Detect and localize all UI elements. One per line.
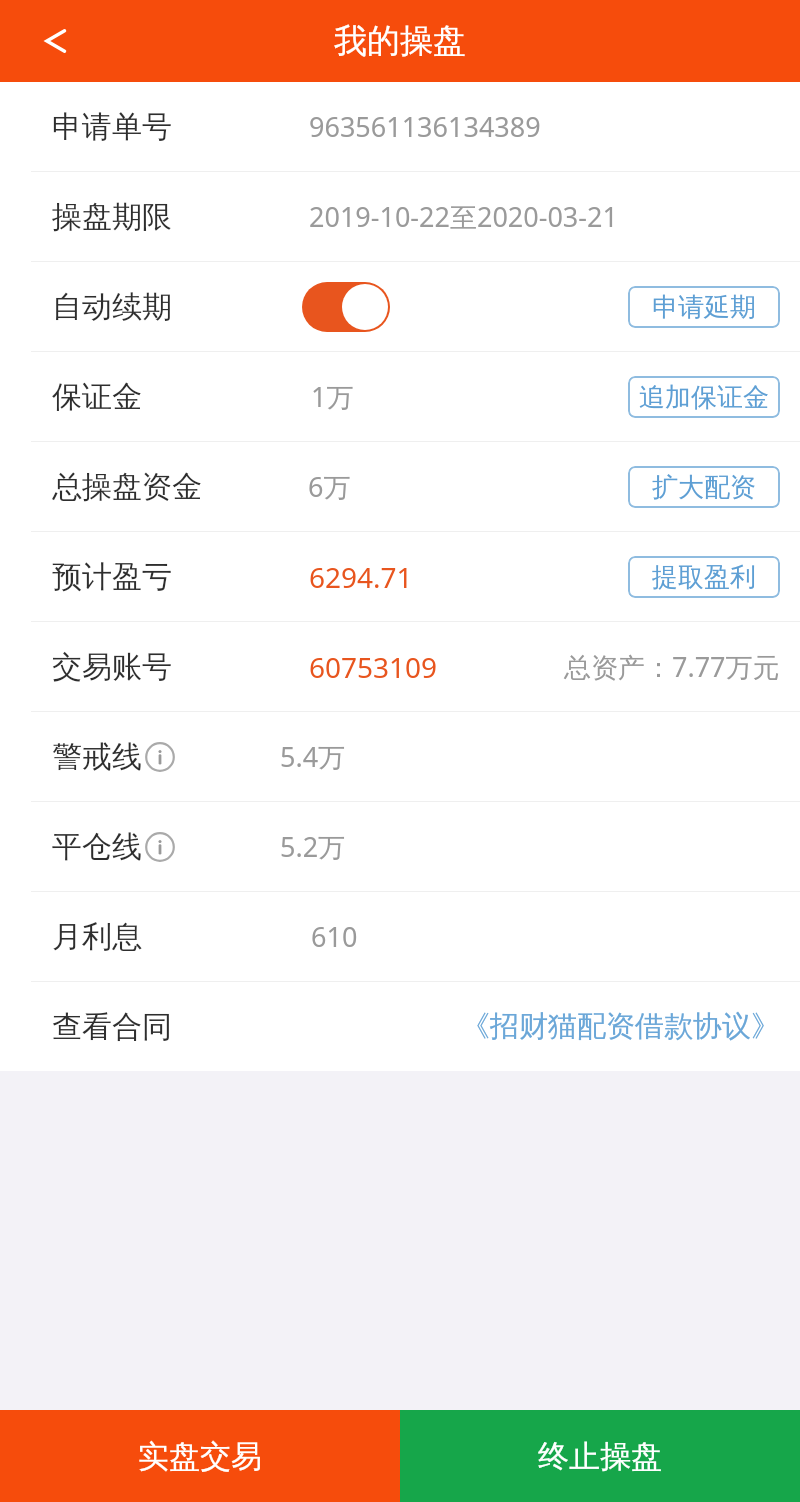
button[interactable]: 月利息 [0,892,800,981]
staticText: 平仓线 [52,828,142,866]
button[interactable]: 警戒线 [0,712,800,801]
button[interactable]: 返回 [22,10,84,72]
staticText: 6万 [308,468,351,505]
button[interactable]: 申请单号 [0,82,800,171]
staticText: 总资产：7.77万元 [564,648,780,685]
staticText: 扩大配资 [652,471,756,504]
staticText: 保证金 [52,378,142,416]
staticText: 交易账号 [52,648,172,686]
button[interactable]: 查看合同 [0,982,800,1071]
staticText: 追加保证金 [639,381,769,414]
button[interactable]: 预计盈亏 [0,532,800,621]
button[interactable]: 保证金 [0,352,800,441]
staticText: 《招财猫配资借款协议》 [461,1008,780,1045]
staticText: 预计盈亏 [52,558,172,596]
staticText: 1万 [311,378,354,415]
button[interactable]: 实盘交易 [0,1410,400,1502]
staticText: 我的操盘 [334,20,466,62]
staticText: 月利息 [52,918,142,956]
staticText: 实盘交易 [138,1437,262,1476]
staticText: 60753109 [309,648,438,686]
staticText: 963561136134389 [309,108,541,145]
button[interactable]: 扩大配资 [628,466,780,508]
staticText: 查看合同 [52,1008,172,1046]
button[interactable]: 追加保证金 [628,376,780,418]
button[interactable]: 终止操盘 [400,1410,800,1502]
staticText: 总操盘资金 [52,468,202,506]
button[interactable]: 总操盘资金 [0,442,800,531]
staticText: 2019-10-22至2020-03-21 [309,198,618,235]
staticText: 5.2万 [280,828,346,865]
button[interactable]: 平仓线 [0,802,800,891]
staticText: 自动续期 [52,288,172,326]
staticText: 警戒线 [52,738,142,776]
button[interactable]: 自动续期 [0,262,800,351]
button[interactable]: 交易账号 [0,622,800,711]
staticText: 申请延期 [652,291,756,324]
staticText: 申请单号 [52,108,172,146]
staticText: 610 [311,918,358,955]
staticText: 5.4万 [280,738,346,775]
staticText: 终止操盘 [538,1437,662,1476]
staticText: 提取盈利 [652,561,756,594]
button[interactable]: 自动续期开关 [302,282,390,332]
staticText: 6294.71 [309,558,413,596]
button[interactable]: 申请延期 [628,286,780,328]
staticText: 操盘期限 [52,198,172,236]
button[interactable]: 操盘期限 [0,172,800,261]
button[interactable]: 提取盈利 [628,556,780,598]
